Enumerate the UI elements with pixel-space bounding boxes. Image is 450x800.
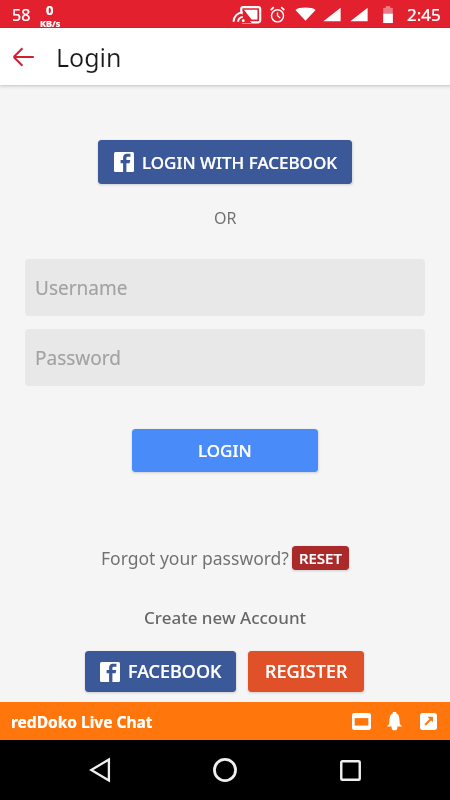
staticText: KB/s [40, 17, 61, 29]
button[interactable]: Back [1, 35, 45, 79]
button[interactable]: RESET [292, 546, 349, 570]
button[interactable]: Notifications [381, 708, 407, 734]
staticText: 2:45 [407, 3, 441, 26]
staticText: FACEBOOK [128, 659, 222, 684]
staticText: 0 [46, 1, 54, 19]
button[interactable]: LOGIN WITH FACEBOOK [98, 140, 352, 184]
staticText: REGISTER [265, 659, 348, 684]
button[interactable]: FACEBOOK [85, 651, 236, 692]
staticText: Forgot your password? [101, 546, 289, 570]
staticText: Login [56, 40, 122, 74]
button[interactable]: Expand [415, 708, 441, 734]
staticText: Username [35, 275, 128, 301]
button[interactable]: Recents [326, 746, 374, 794]
button[interactable]: Username [25, 259, 425, 316]
staticText: RESET [299, 548, 342, 568]
staticText: Password [35, 345, 121, 371]
staticText: LOGIN [198, 439, 252, 462]
staticText: LOGIN WITH FACEBOOK [142, 151, 337, 174]
staticText: redDoko Live Chat [11, 711, 153, 732]
button[interactable]: Password [25, 329, 425, 386]
button[interactable]: REGISTER [248, 651, 364, 692]
button[interactable]: Back [76, 746, 124, 794]
button[interactable]: LOGIN [132, 429, 318, 472]
staticText: 58 [12, 4, 31, 26]
staticText: OR [214, 207, 237, 229]
button[interactable]: Create new Account [144, 606, 307, 629]
button[interactable]: Minimize [348, 708, 374, 734]
button[interactable]: Home [201, 746, 249, 794]
